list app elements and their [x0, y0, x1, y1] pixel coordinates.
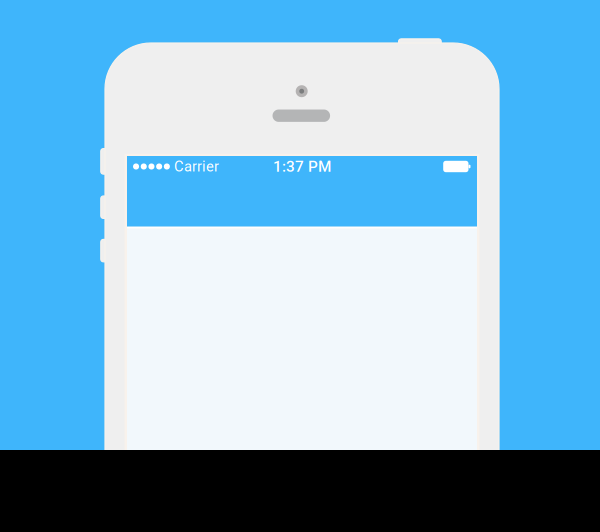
button[interactable]: Volume down	[101, 239, 109, 262]
staticText: Carrier	[174, 158, 219, 175]
staticText: 1:37 PM	[273, 157, 331, 175]
